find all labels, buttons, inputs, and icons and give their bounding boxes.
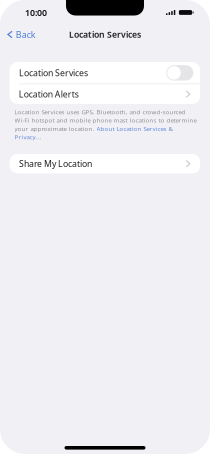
staticText: Location Services: [19, 67, 88, 79]
button[interactable]: Location Services: [10, 62, 200, 84]
button[interactable]: Share My Location: [10, 154, 200, 173]
staticText: Location Services: [69, 29, 141, 40]
staticText: Privacy...: [15, 133, 42, 141]
staticText: Back: [16, 28, 36, 40]
staticText: About Location Services &: [97, 124, 173, 133]
staticText: Wi-Fi hotspot and mobile phone mast loca…: [15, 116, 197, 124]
staticText: your approximate location.: [15, 124, 97, 133]
staticText: Location Alerts: [19, 88, 79, 100]
staticText: 10:00: [25, 6, 47, 18]
button[interactable]: Back: [0, 25, 42, 43]
staticText: Share My Location: [19, 158, 92, 170]
button[interactable]: Location Alerts: [10, 84, 200, 104]
staticText: Location Services uses GPS, Bluetooth, a…: [15, 108, 186, 116]
button[interactable]: About Location Services &: [97, 124, 173, 133]
